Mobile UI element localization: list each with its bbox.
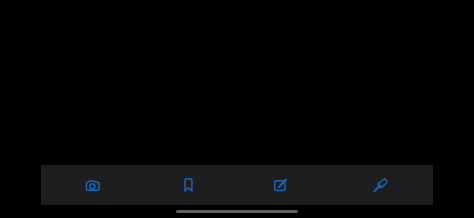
button[interactable]: Color picker (335, 165, 433, 205)
button[interactable]: Camera (41, 165, 139, 205)
button[interactable]: Bookmarks (139, 165, 237, 205)
button[interactable]: Compose (237, 165, 335, 205)
